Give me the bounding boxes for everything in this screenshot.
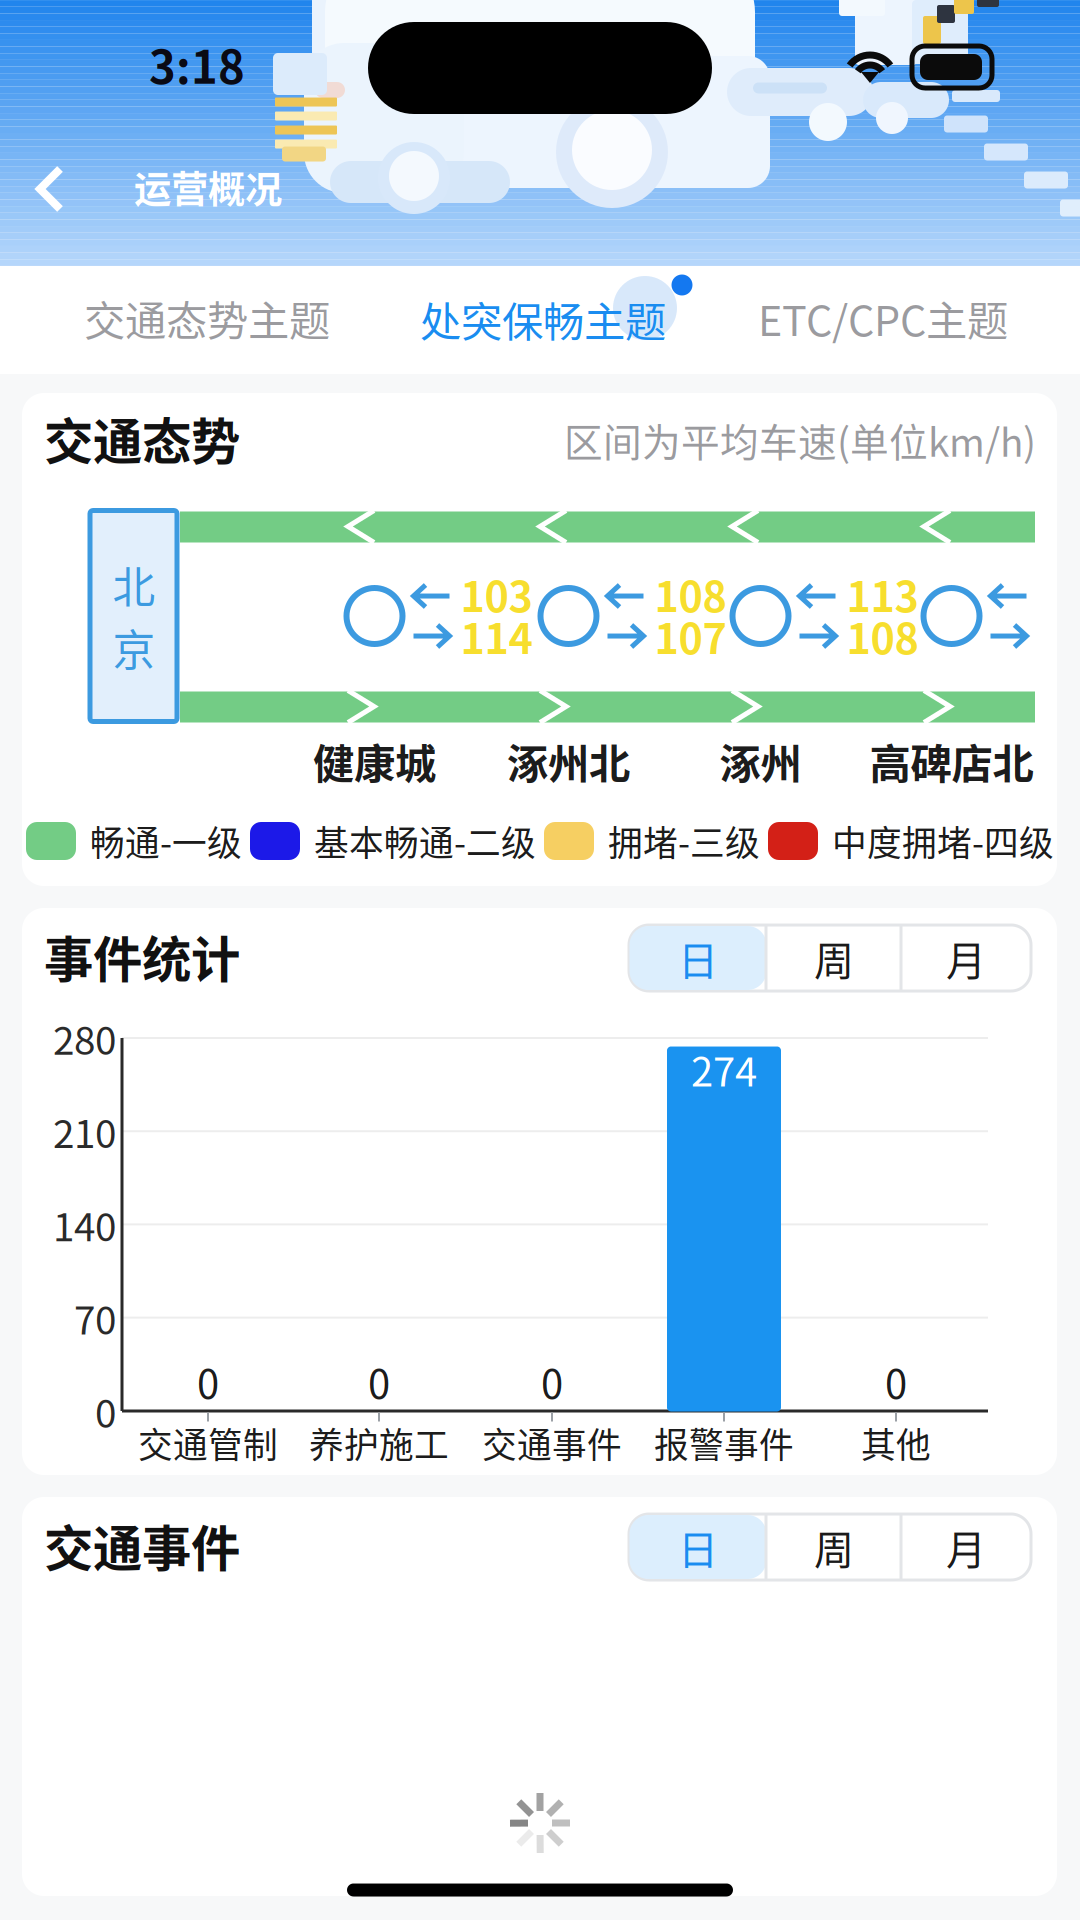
staticText: 健康城	[313, 731, 436, 791]
staticText: 事件统计	[44, 920, 240, 992]
staticText: 处突保畅主题	[420, 289, 666, 349]
staticText: 113	[846, 564, 918, 624]
staticText: 高碑店北	[869, 731, 1033, 791]
staticText: 拥堵-三级	[608, 816, 760, 866]
staticText: 交通事件	[44, 1509, 240, 1581]
staticText: 103	[460, 564, 532, 624]
staticText: 月	[946, 1518, 986, 1576]
staticText: 0	[541, 1352, 563, 1410]
staticText: 280	[53, 1010, 116, 1066]
staticText: 月	[946, 929, 986, 987]
staticText: 报警事件	[654, 1418, 794, 1468]
staticText: 107	[654, 606, 726, 666]
staticText: 运营概况	[134, 160, 282, 214]
staticText: 养护施工	[309, 1418, 449, 1468]
button[interactable]: 日	[629, 926, 766, 990]
button[interactable]: 处突保畅主题	[406, 275, 680, 363]
staticText: 210	[53, 1103, 116, 1159]
button[interactable]: 交通态势主题	[70, 274, 344, 362]
staticText: 108	[846, 606, 918, 666]
button[interactable]: 周	[767, 1515, 900, 1579]
staticText: 周	[814, 1518, 854, 1576]
staticText: 日	[678, 1518, 718, 1576]
staticText: 交通态势主题	[84, 288, 330, 348]
button[interactable]: 运营概况	[122, 148, 294, 226]
staticText: 140	[53, 1196, 116, 1252]
staticText: 交通管制	[138, 1418, 278, 1468]
staticText: 0	[197, 1352, 219, 1410]
staticText: 274	[691, 1040, 757, 1098]
staticText: 其他	[861, 1418, 931, 1468]
staticText: 70	[74, 1290, 116, 1346]
staticText: ETC/CPC主题	[758, 288, 1008, 348]
staticText: 区间为平均车速(单位km/h)	[564, 412, 1036, 468]
staticText: 北	[112, 554, 155, 615]
button[interactable]: ETC/CPC主题	[744, 274, 1022, 362]
staticText: 交通态势	[44, 402, 240, 474]
staticText: 108	[654, 564, 726, 624]
staticText: 涿州	[719, 731, 801, 791]
staticText: 0	[95, 1383, 116, 1439]
button[interactable]: 周	[767, 926, 900, 990]
button[interactable]: 返回	[10, 141, 90, 237]
staticText: 0	[885, 1352, 907, 1410]
button[interactable]: 月	[902, 926, 1030, 990]
staticText: 涿州北	[507, 731, 630, 791]
button[interactable]: 月	[902, 1515, 1030, 1579]
staticText: 0	[368, 1352, 390, 1410]
staticText: 3:18	[149, 31, 245, 97]
staticText: 畅通-一级	[90, 816, 242, 866]
staticText: 114	[460, 606, 532, 666]
staticText: 基本畅通-二级	[314, 816, 536, 866]
staticText: 交通事件	[482, 1418, 622, 1468]
staticText: 日	[678, 929, 718, 987]
button[interactable]: 日	[629, 1515, 766, 1579]
staticText: 周	[814, 929, 854, 987]
staticText: 京	[112, 617, 155, 678]
staticText: 中度拥堵-四级	[832, 816, 1054, 866]
